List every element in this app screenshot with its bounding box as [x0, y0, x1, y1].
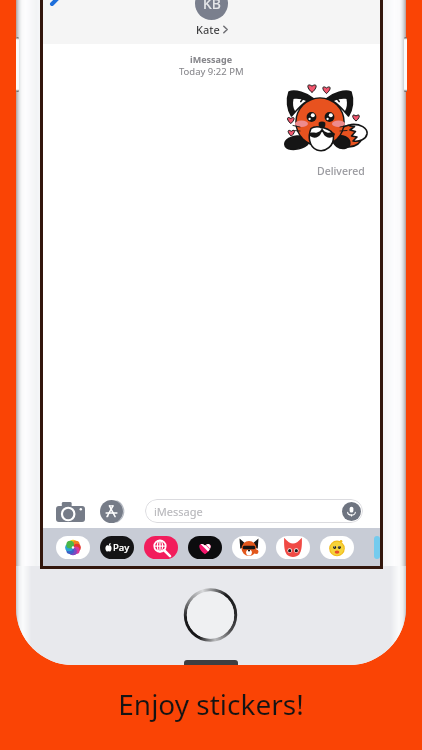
button[interactable]: Apple Pay — [100, 536, 134, 559]
button[interactable]: Dictate — [342, 502, 361, 521]
button[interactable]: Home — [184, 588, 237, 641]
staticText: Delivered — [317, 164, 365, 178]
button[interactable]: Photos — [56, 536, 90, 559]
staticText: Enjoy stickers! — [118, 685, 304, 723]
staticText: KB — [203, 0, 221, 13]
button[interactable]: Kate — [196, 22, 228, 37]
button[interactable]: App Store — [100, 499, 125, 524]
button[interactable]: More apps — [374, 536, 380, 559]
staticText: Pay — [113, 541, 130, 554]
button[interactable]: Emoji stickers — [320, 536, 354, 559]
button[interactable]: Camera — [56, 500, 85, 523]
button[interactable]: Search — [144, 536, 178, 559]
button[interactable]: Fox stickers — [232, 536, 266, 559]
staticText: Kate — [196, 22, 220, 37]
staticText: iMessage — [190, 53, 233, 65]
staticText: iMessage — [154, 504, 203, 519]
button[interactable]: Back — [48, 0, 82, 14]
button[interactable]: KB — [195, 0, 228, 20]
button[interactable]: iMessage — [145, 499, 363, 523]
button[interactable]: Red fox stickers — [276, 536, 310, 559]
button[interactable]: Music — [188, 536, 222, 559]
staticText: Today 9:22 PM — [179, 65, 244, 78]
